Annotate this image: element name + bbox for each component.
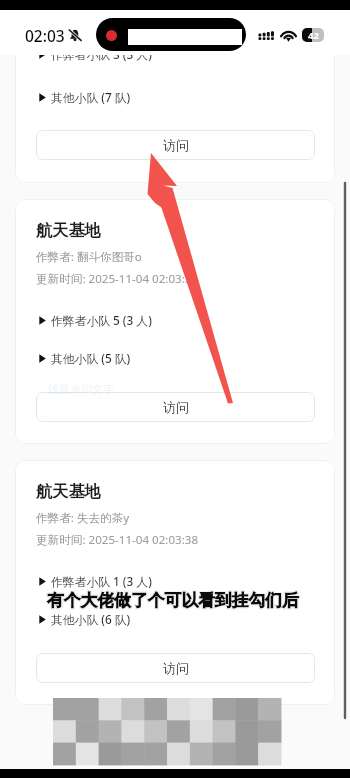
button[interactable]: 访问 xyxy=(36,653,315,683)
staticText: 其他小队 (5 队) xyxy=(51,350,131,366)
staticText: 有个大佬做了个可以看到挂勾们后 xyxy=(46,591,298,612)
button[interactable]: 访问 xyxy=(36,130,315,160)
button[interactable]: Recording indicator xyxy=(96,18,246,51)
button[interactable]: 作弊者小队 3 (3 人) xyxy=(39,46,152,62)
staticText: 有个大佬做了个可以看到挂勾们后 xyxy=(47,590,299,611)
button[interactable]: 作弊者小队 1 (3 人) xyxy=(39,573,152,589)
staticText: 更新时间: 2025-11-04 02:03:38 xyxy=(36,532,199,548)
staticText: 作弊者: 翻斗你图哥o xyxy=(36,249,142,265)
staticText: 作弊者小队 3 (3 人) xyxy=(51,46,152,62)
button[interactable] xyxy=(15,199,335,444)
staticText: 作弊者小队 1 (3 人) xyxy=(51,573,152,589)
button[interactable]: 作弊者小队 5 (3 人) xyxy=(39,312,152,328)
button[interactable]: 访问 xyxy=(36,392,315,422)
other: Notifications muted xyxy=(68,28,82,42)
staticText: 有个大佬做了个可以看到挂勾们后 xyxy=(48,590,300,611)
other: Wi-Fi xyxy=(280,29,297,42)
staticText: 02:03 xyxy=(25,25,65,46)
staticText: 访问 xyxy=(163,660,189,676)
staticText: 有个大佬做了个可以看到挂勾们后 xyxy=(48,591,300,612)
staticText: 作弊者小队 5 (3 人) xyxy=(51,312,152,328)
staticText: 航天基地 xyxy=(36,481,101,501)
staticText: 作弊者: 失去的茶y xyxy=(36,510,130,526)
button[interactable] xyxy=(15,0,335,183)
staticText: 其他小队 (6 队) xyxy=(51,611,131,627)
staticText: 42 xyxy=(308,29,319,42)
staticText: 有个大佬做了个可以看到挂勾们后 xyxy=(48,589,300,610)
staticText: 访问 xyxy=(163,399,189,415)
staticText: 其他小队 (7 队) xyxy=(51,89,131,105)
staticText: 有个大佬做了个可以看到挂勾们后 xyxy=(47,591,299,612)
staticText: 浅蓝水印文字 xyxy=(48,382,114,396)
staticText: 有个大佬做了个可以看到挂勾们后 xyxy=(46,589,298,610)
other: Signal strength xyxy=(258,30,275,42)
button[interactable]: 其他小队 (7 队) xyxy=(39,89,131,105)
staticText: 有个大佬做了个可以看到挂勾们后 xyxy=(46,590,298,611)
button[interactable]: 其他小队 (5 队) xyxy=(39,350,131,366)
button[interactable]: 其他小队 (6 队) xyxy=(39,611,131,627)
button[interactable] xyxy=(15,460,335,705)
staticText: 更新时间: 2025-11-04 02:03:35 xyxy=(36,271,199,287)
staticText: 有个大佬做了个可以看到挂勾们后 xyxy=(47,589,299,610)
staticText: 航天基地 xyxy=(36,220,101,240)
staticText: 访问 xyxy=(163,137,189,153)
